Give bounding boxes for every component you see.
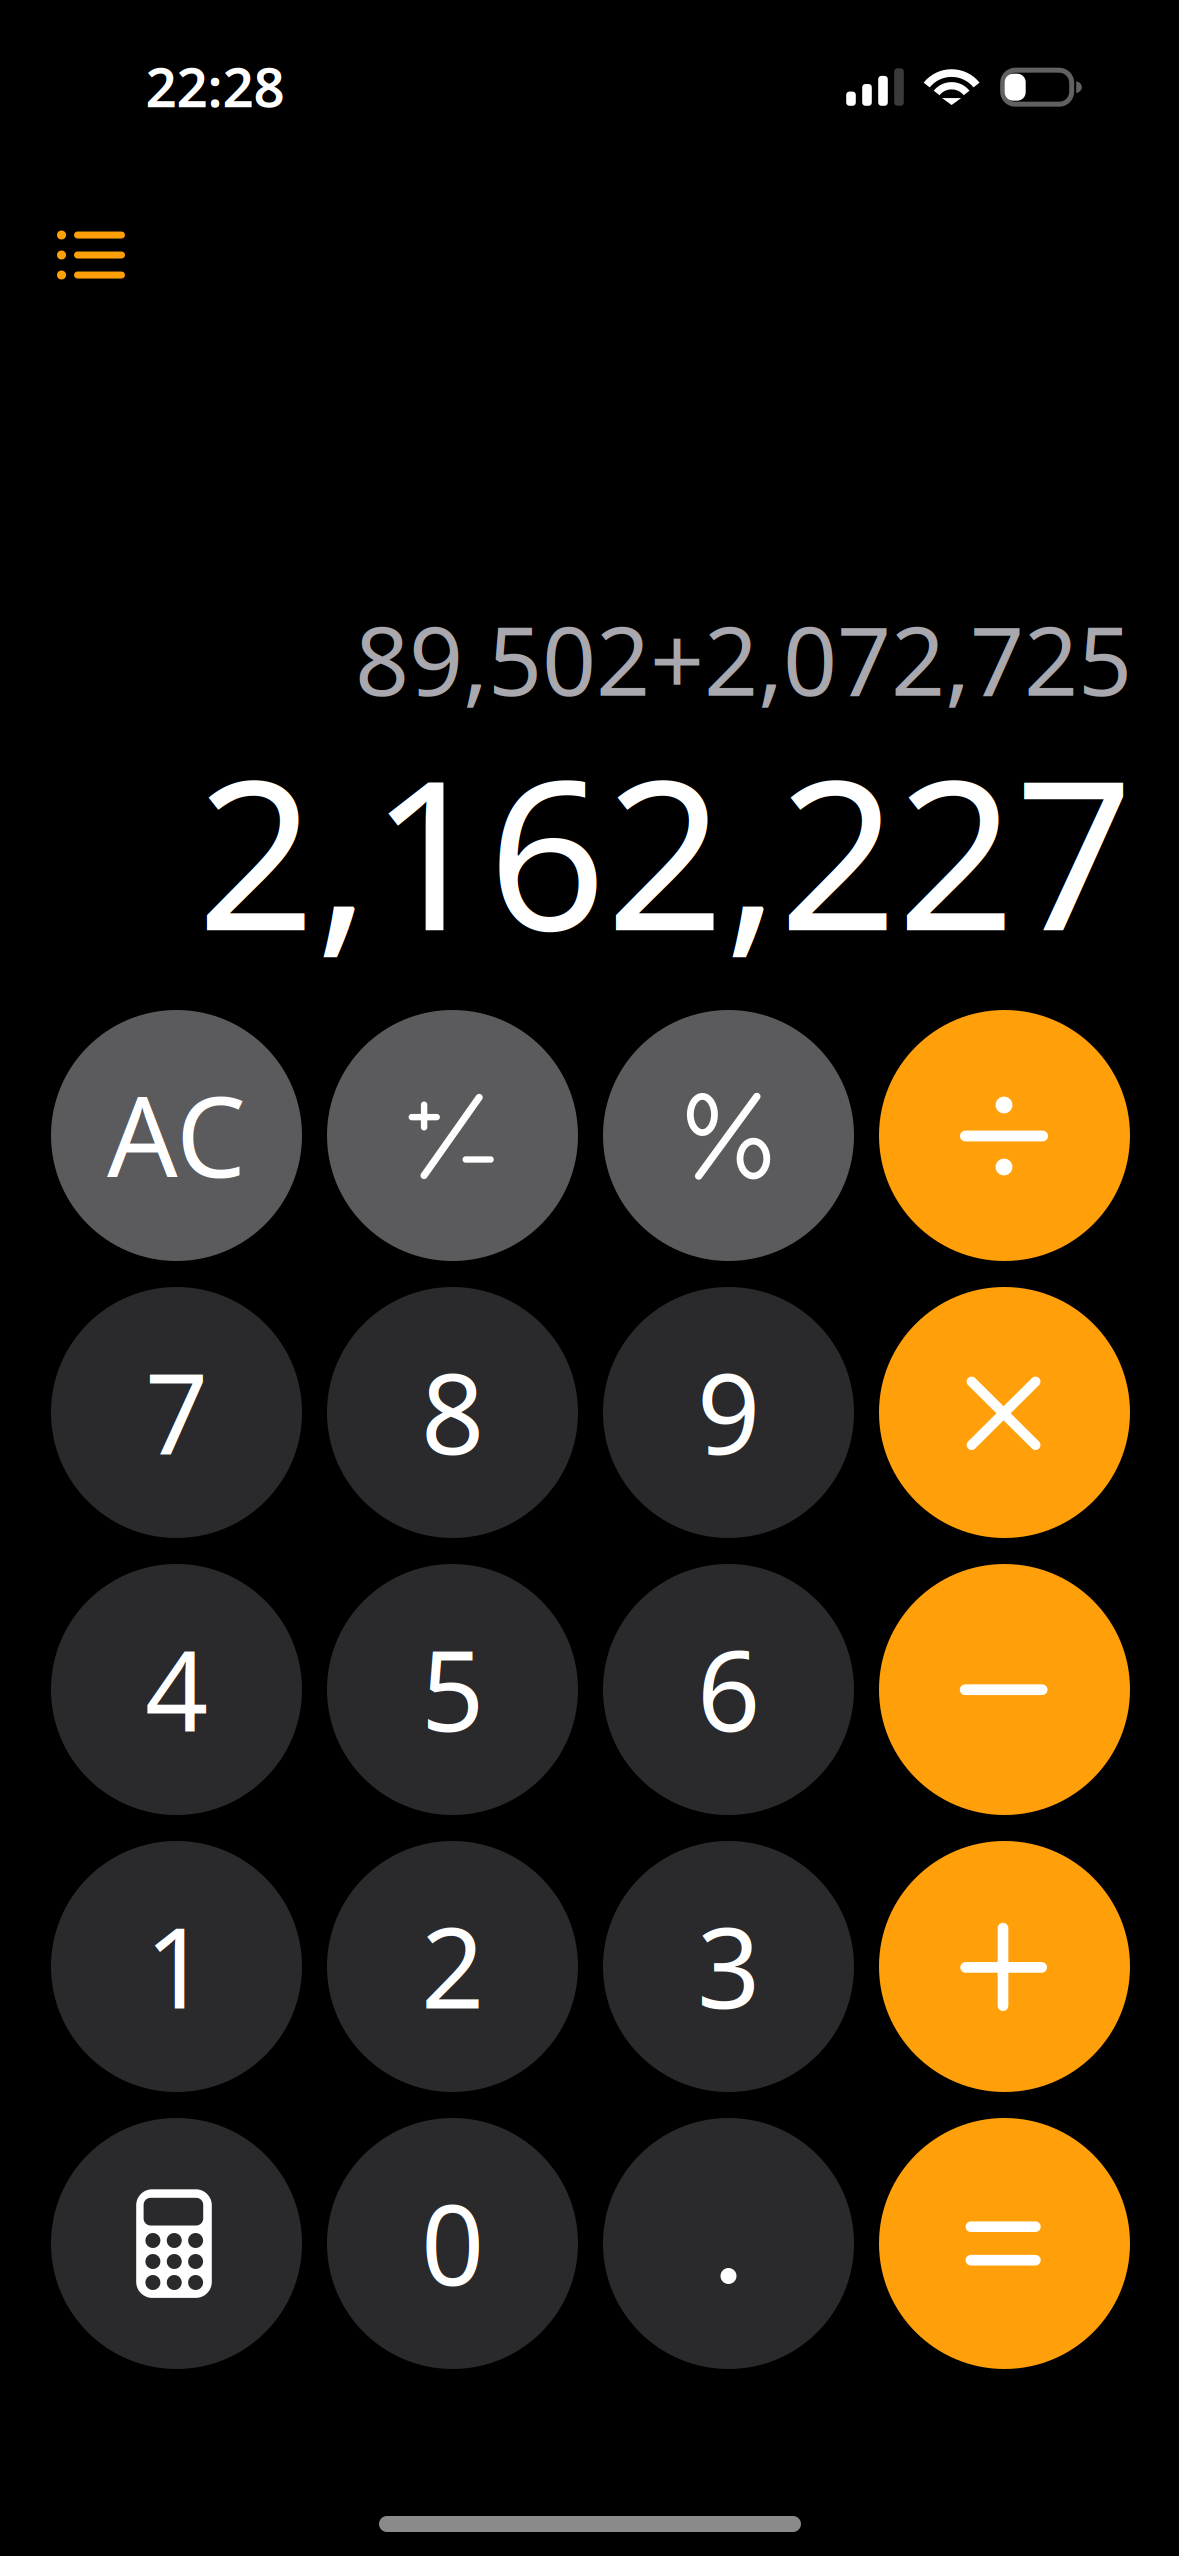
staticText: 4: [145, 1615, 208, 1762]
staticText: 7: [145, 1338, 208, 1485]
staticText: 1: [145, 1892, 208, 2039]
staticText: 89,502+2,072,725: [355, 596, 1132, 722]
staticText: AC: [107, 1061, 246, 1208]
button[interactable]: 8: [327, 1287, 578, 1538]
button[interactable]: Equals: [879, 2118, 1130, 2369]
staticText: 22:28: [145, 50, 284, 122]
button[interactable]: 6: [603, 1564, 854, 1815]
staticText: 3: [697, 1892, 760, 2039]
button[interactable]: AC: [51, 1010, 302, 1261]
staticText: 5: [421, 1615, 484, 1762]
staticText: 6: [697, 1615, 760, 1762]
button[interactable]: 1: [51, 1841, 302, 2092]
button[interactable]: 5: [327, 1564, 578, 1815]
button[interactable]: 3: [603, 1841, 854, 2092]
button[interactable]: Subtract: [879, 1564, 1130, 1815]
staticText: 2,162,227: [197, 713, 1133, 987]
button[interactable]: 7: [51, 1287, 302, 1538]
staticText: 0: [421, 2169, 484, 2316]
staticText: 8: [421, 1338, 484, 1485]
button[interactable]: Add: [879, 1841, 1130, 2092]
button[interactable]: Plus Minus: [327, 1010, 578, 1261]
button[interactable]: Percent: [603, 1010, 854, 1261]
button[interactable]: 9: [603, 1287, 854, 1538]
button[interactable]: History: [25, 189, 157, 321]
button[interactable]: Multiply: [879, 1287, 1130, 1538]
button[interactable]: 4: [51, 1564, 302, 1815]
button[interactable]: 2: [327, 1841, 578, 2092]
button[interactable]: 0: [327, 2118, 578, 2369]
staticText: 9: [697, 1338, 760, 1485]
button[interactable]: Calculator: [51, 2118, 302, 2369]
staticText: 2: [421, 1892, 484, 2039]
button[interactable]: Divide: [879, 1010, 1130, 1261]
button[interactable]: Decimal point: [603, 2118, 854, 2369]
